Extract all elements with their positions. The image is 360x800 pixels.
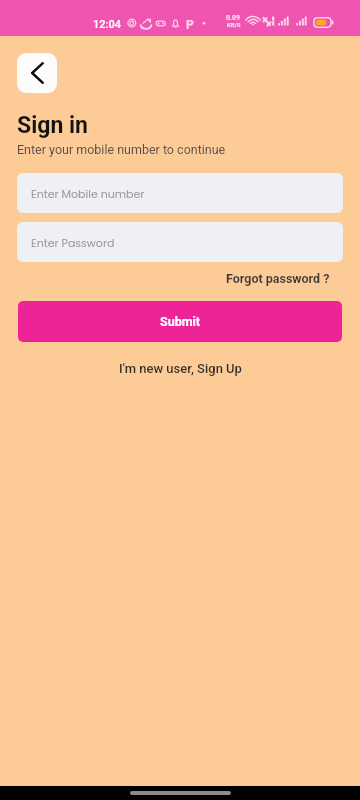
staticText: Enter Mobile number [31, 186, 145, 201]
button[interactable]: Back [17, 53, 57, 93]
button[interactable]: I'm new user, Sign Up [115, 357, 246, 380]
button[interactable]: Enter Password [17, 222, 343, 262]
staticText: I'm new user, Sign Up [119, 361, 242, 376]
staticText: P [186, 18, 194, 32]
staticText: 0.09 [226, 14, 241, 22]
staticText: Forgot password ? [226, 271, 330, 286]
staticText: Enter Password [31, 235, 115, 250]
staticText: Enter your mobile number to continue [17, 142, 226, 157]
staticText: 12:04 [93, 18, 121, 31]
staticText: Sign in [17, 112, 88, 139]
staticText: KB/S [227, 21, 241, 28]
staticText: Submit [160, 314, 201, 329]
button[interactable]: Enter Mobile number [17, 173, 343, 213]
button[interactable]: Submit [18, 301, 342, 342]
button[interactable]: Forgot password ? [226, 269, 360, 288]
